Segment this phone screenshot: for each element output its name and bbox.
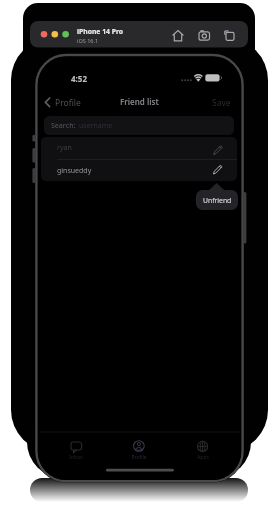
staticText: Unfriend [203,196,232,205]
button[interactable] [221,27,238,44]
staticText: iOS 16.1 [77,37,99,44]
staticText: Friend list [120,96,159,107]
staticText: Apps [197,454,209,461]
button[interactable] [170,27,187,44]
button[interactable]: ryan [41,137,237,159]
button[interactable]: Save [208,94,238,110]
button[interactable] [58,436,95,462]
button[interactable] [120,436,157,462]
staticText: ryan [57,143,72,153]
staticText: Search: [51,121,76,131]
button[interactable]: Search: [44,116,234,135]
button[interactable]: Profile [43,94,85,110]
staticText: Profile [55,97,81,109]
button[interactable]: ginsueddy [41,160,237,181]
staticText: iPhone 14 Pro [77,27,124,36]
staticText: Inbox [69,454,83,461]
button[interactable] [196,27,213,44]
button[interactable] [184,436,221,462]
staticText: ginsueddy [57,166,92,176]
staticText: username [79,121,113,131]
button[interactable]: Unfriend [196,190,238,210]
staticText: Save [212,97,231,109]
staticText: Profile [131,454,147,461]
staticText: 4:52 [71,73,87,84]
